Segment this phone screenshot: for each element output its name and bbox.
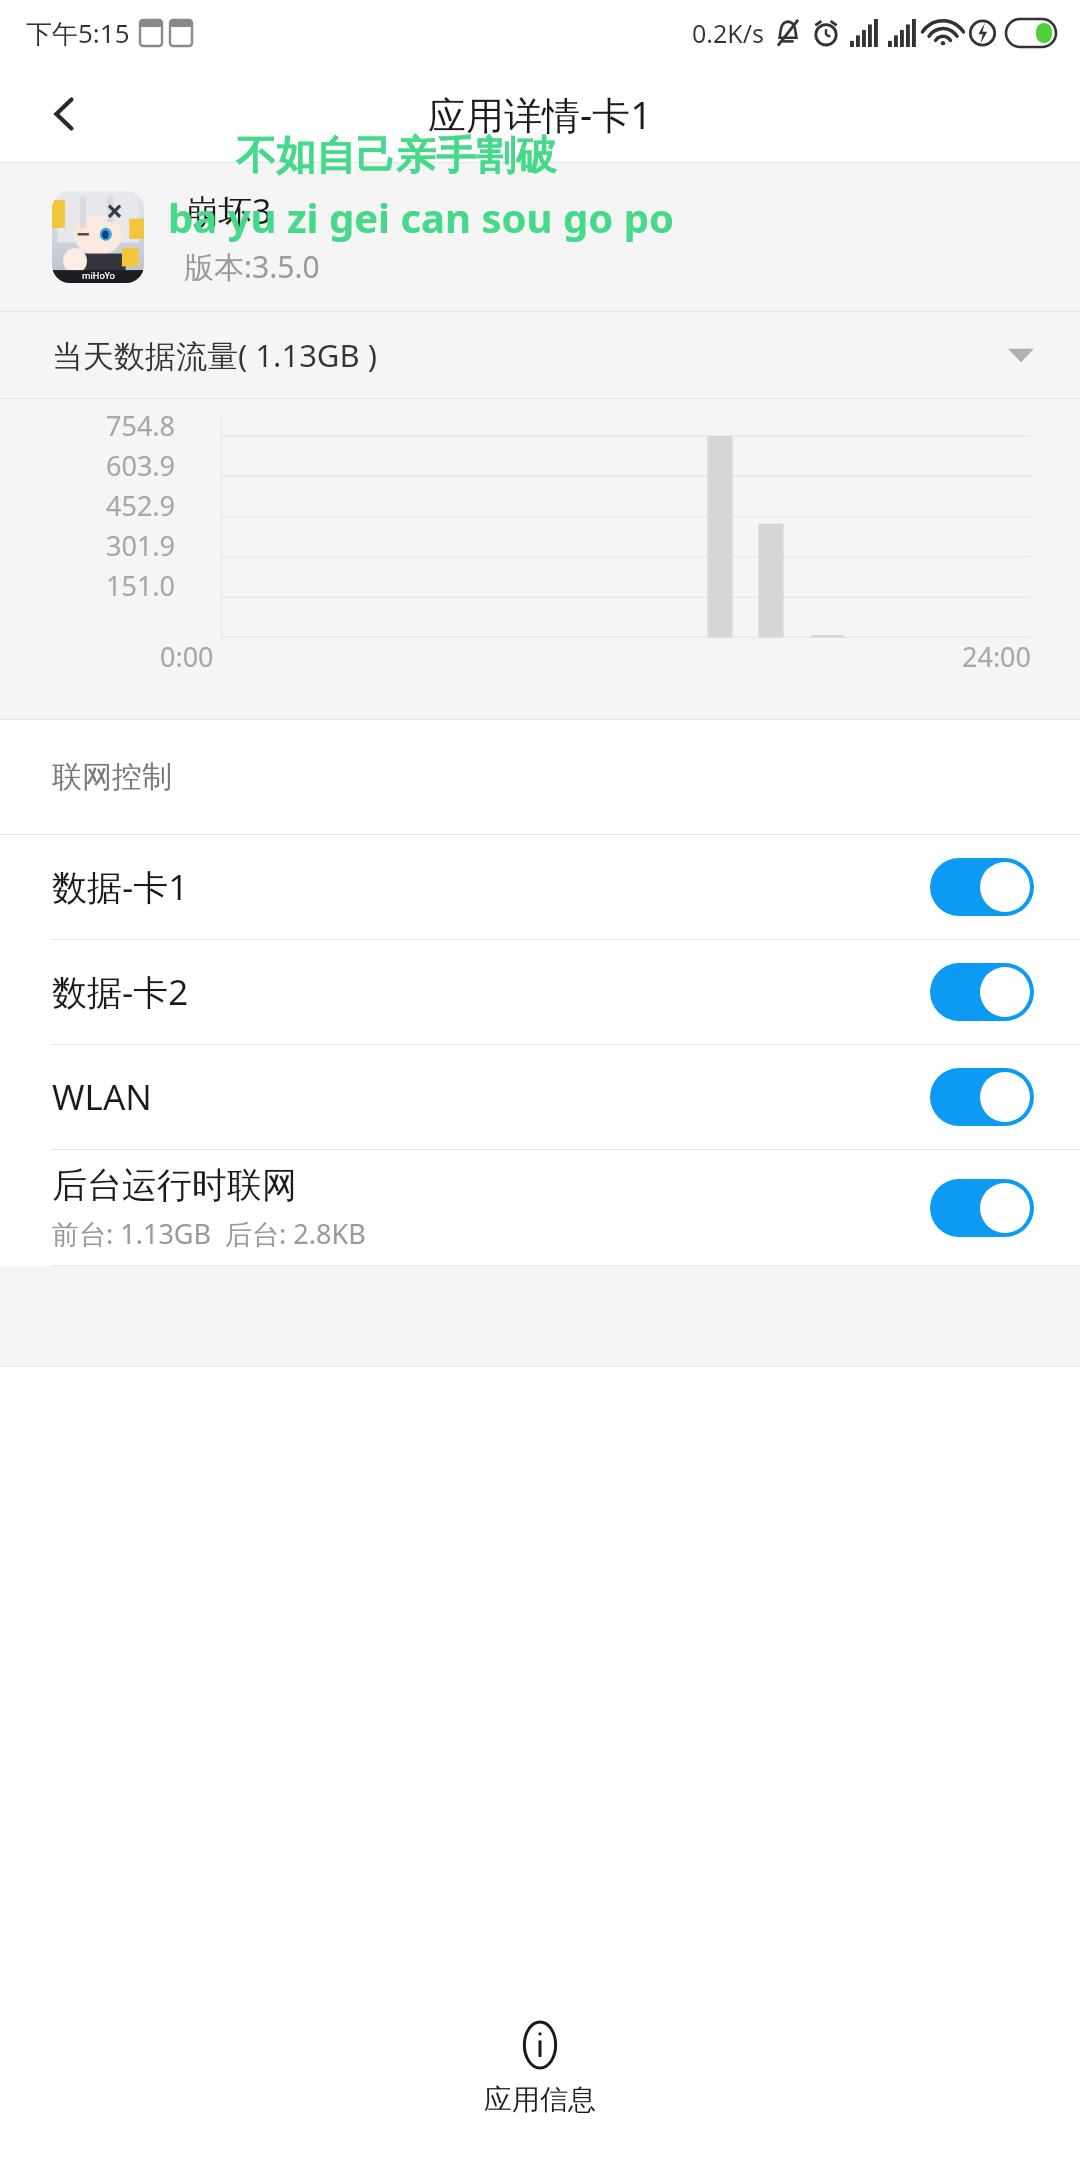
staticText: 24:00 [962,638,1032,675]
staticText: 151.0 [40,567,175,604]
staticText: ba yu zi gei can sou go po [168,190,674,244]
staticText: 数据-卡2 [52,968,189,1016]
staticText: 前台: 1.13GB 后台: 2.8KB [52,1215,366,1252]
button[interactable]: Toggle on [930,858,1034,916]
button[interactable]: App info [0,1978,1080,2160]
staticText: 不如自己亲手割破 [236,130,556,180]
staticText: miHoYo [82,269,115,281]
staticText: WLAN [52,1073,152,1121]
button[interactable]: Toggle on [930,1068,1034,1126]
button[interactable]: Toggle on [930,1179,1034,1237]
button[interactable]: Toggle on [930,963,1034,1021]
button[interactable]: 后台运行时联网 [0,1150,1080,1265]
other: App info [517,2022,563,2068]
staticText: 603.9 [40,447,175,484]
staticText: 数据-卡1 [52,863,189,911]
other: Expand [1008,346,1034,364]
staticText: 0:00 [160,638,214,675]
staticText: 应用信息 [484,2082,596,2117]
staticText: 452.9 [40,487,175,524]
staticText: 下午5:15 [26,15,130,51]
staticText: 崩坏3 [184,188,272,234]
staticText: 301.9 [40,527,175,564]
staticText: 版本:3.5.0 [184,246,320,287]
staticText: 当天数据流量( 1.13GB ) [52,334,377,376]
button[interactable]: Back [34,83,96,145]
staticText: 应用详情-卡1 [428,88,652,140]
button[interactable]: 数据-卡1 [0,835,1080,939]
staticText: 联网控制 [52,758,172,796]
button[interactable]: miHoYo [0,163,1080,311]
button[interactable]: WLAN [0,1045,1080,1149]
staticText: 后台运行时联网 [52,1163,297,1207]
staticText: 754.8 [40,407,175,444]
button[interactable]: 数据-卡2 [0,940,1080,1044]
staticText: 0.2K/s [692,16,765,50]
button[interactable]: 当天数据流量( 1.13GB ) [0,312,1080,398]
